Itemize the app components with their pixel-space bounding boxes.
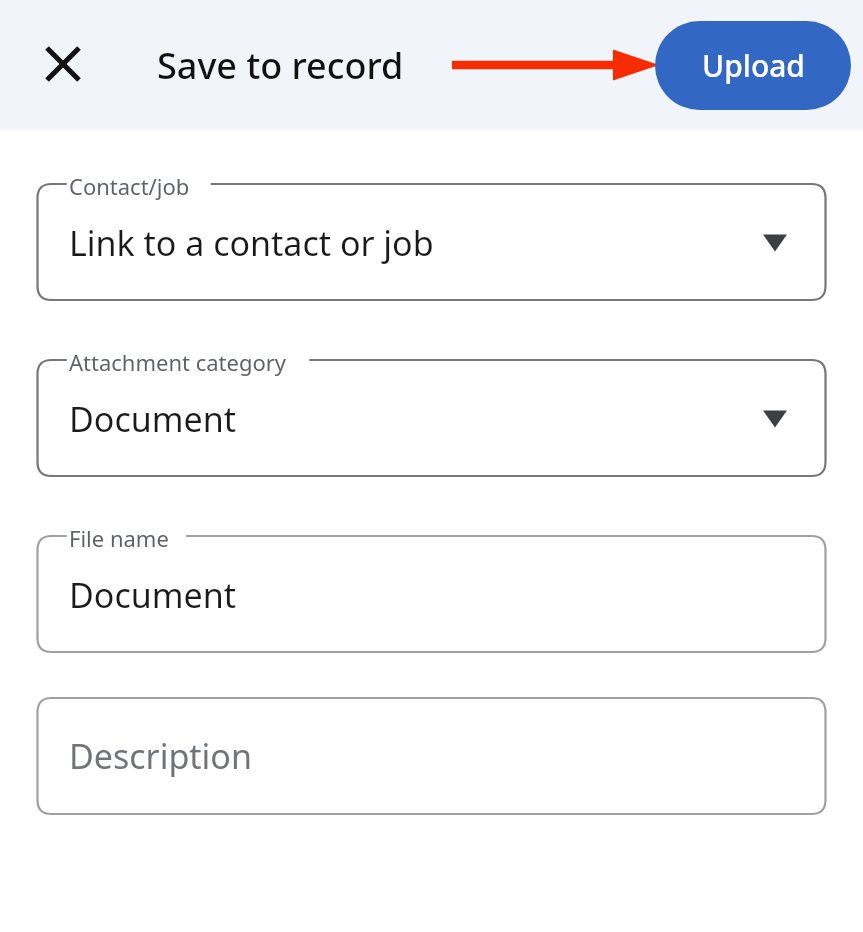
staticText: File name xyxy=(69,523,169,553)
staticText: Document xyxy=(69,396,236,442)
staticText: Contact/job xyxy=(69,171,190,201)
staticText: Link to a contact or job xyxy=(69,220,434,266)
button[interactable]: Upload xyxy=(655,21,851,110)
button[interactable]: Description xyxy=(36,696,827,816)
staticText: Attachment category xyxy=(69,347,287,377)
button[interactable]: Close xyxy=(38,39,88,89)
staticText: Document xyxy=(69,572,236,618)
button[interactable]: Contact/job xyxy=(36,168,827,302)
staticText: Upload xyxy=(702,45,805,86)
button[interactable]: Open dropdown xyxy=(762,233,788,253)
button[interactable]: Open dropdown xyxy=(762,409,788,429)
button[interactable]: Attachment category xyxy=(36,344,827,478)
button[interactable]: File name xyxy=(36,520,827,654)
staticText: Save to record xyxy=(157,41,404,90)
staticText: Description xyxy=(69,733,252,779)
